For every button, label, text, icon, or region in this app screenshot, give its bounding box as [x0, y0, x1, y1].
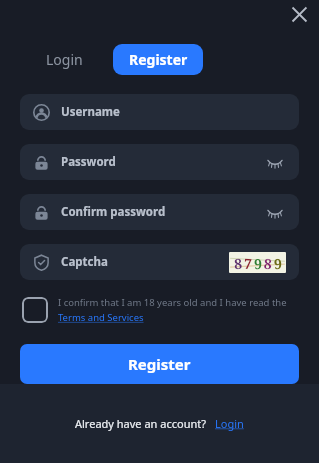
staticText: Already have an account? [75, 416, 206, 431]
staticText: Login [46, 50, 83, 69]
staticText: 9 [254, 254, 262, 272]
button[interactable]: Terms and Services [58, 311, 144, 324]
staticText: 7 [243, 254, 252, 272]
button[interactable]: Captcha [20, 244, 299, 280]
staticText: Password [61, 154, 116, 170]
staticText: Register [128, 354, 191, 374]
staticText: I confirm that I am 18 years old and I h… [58, 296, 287, 309]
staticText: Terms and Services [58, 311, 144, 324]
button[interactable]: Login [38, 44, 91, 75]
staticText: 8 [233, 254, 243, 272]
button[interactable]: Password [20, 144, 299, 180]
staticText: Confirm password [61, 204, 166, 220]
staticText: 9 [273, 254, 282, 272]
button[interactable]: Login [215, 416, 244, 431]
staticText: Register [129, 50, 188, 69]
button[interactable]: Register [113, 44, 203, 75]
button[interactable]: Close [288, 3, 310, 25]
button[interactable]: Register [20, 344, 299, 384]
staticText: Captcha [61, 254, 108, 270]
staticText: Login [215, 416, 244, 431]
button[interactable]: Show password [264, 151, 286, 173]
button[interactable]: I confirm that I am 18 years old and I h… [22, 295, 299, 324]
button[interactable]: Captcha code, tap to refresh [229, 252, 286, 273]
button[interactable]: Username [20, 94, 299, 130]
button[interactable]: Confirm password [20, 194, 299, 230]
button[interactable]: Show password [264, 201, 286, 223]
staticText: Username [61, 104, 120, 120]
staticText: 8 [263, 254, 273, 272]
